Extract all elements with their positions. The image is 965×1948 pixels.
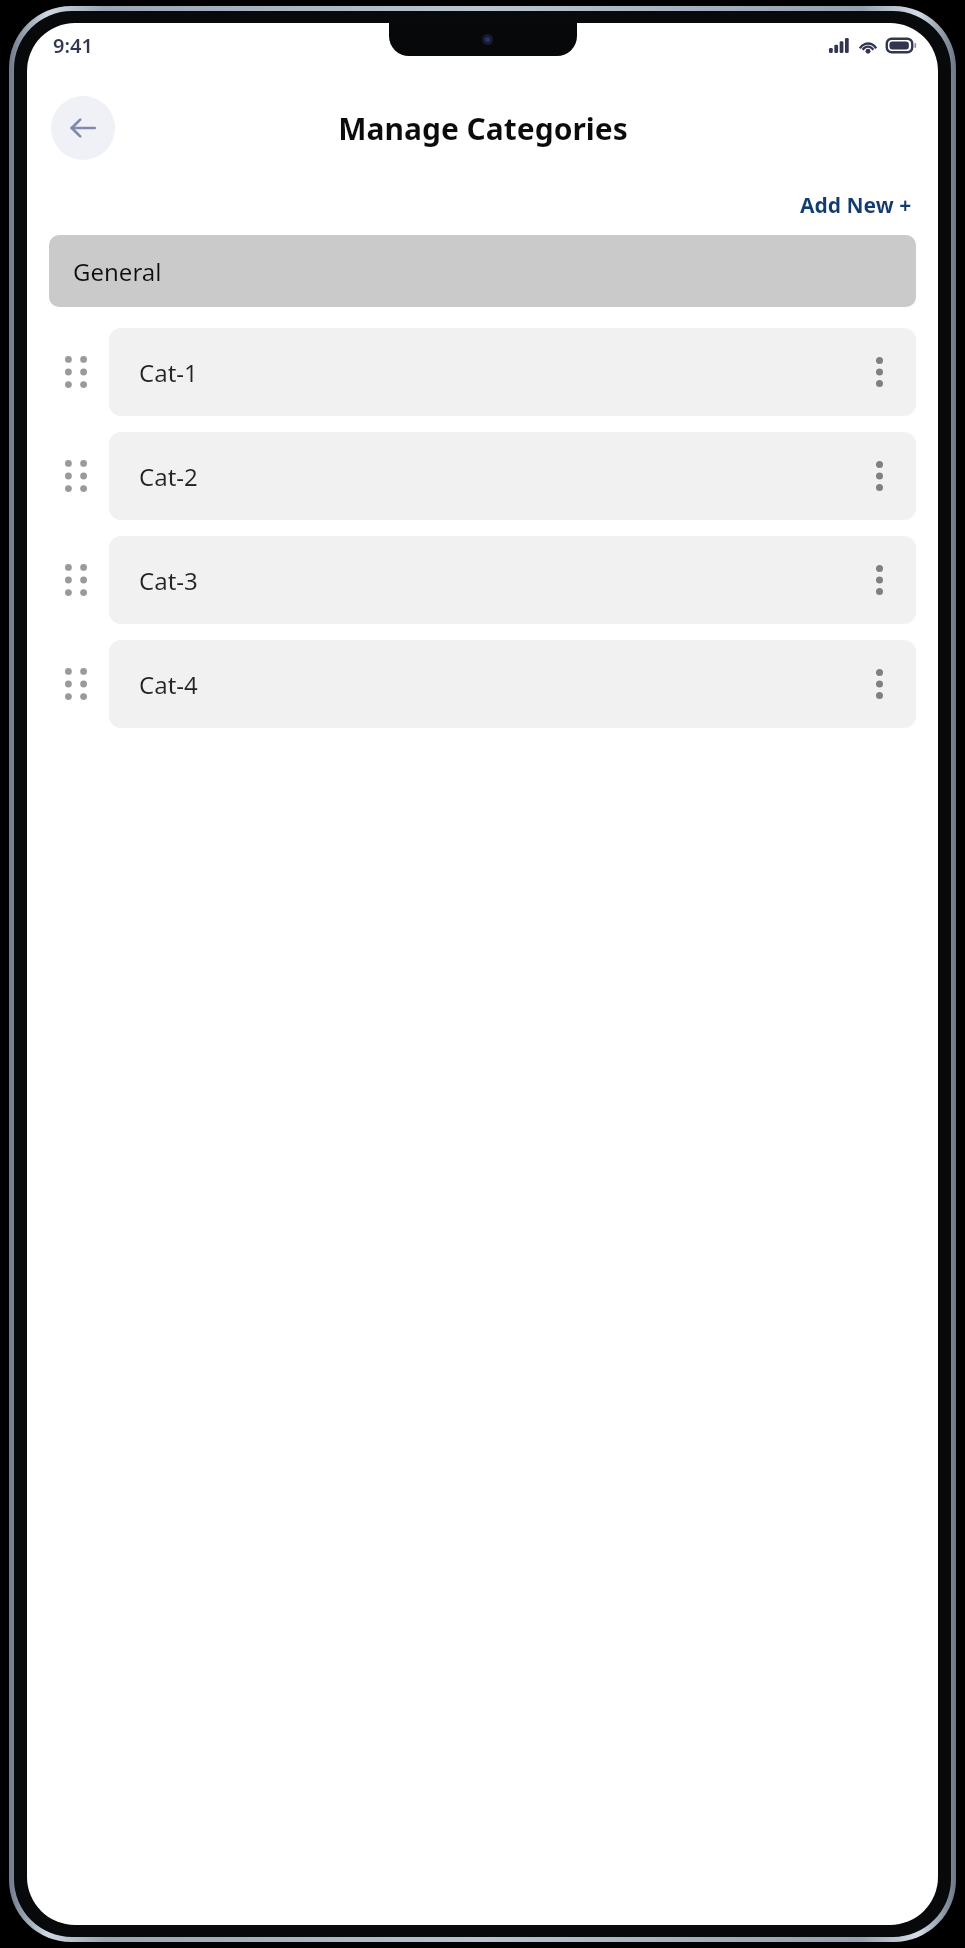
button[interactable]: More options for Cat-4 bbox=[856, 661, 902, 707]
button[interactable]: Reorder Cat-4 bbox=[49, 657, 103, 711]
staticText: General bbox=[73, 255, 162, 288]
button[interactable]: Reorder Cat-2 bbox=[49, 449, 103, 503]
button[interactable]: Back bbox=[51, 96, 115, 160]
staticText: Cat-3 bbox=[139, 564, 856, 597]
button[interactable]: Reorder Cat-1 bbox=[49, 345, 103, 399]
button[interactable]: Cat-2 bbox=[109, 432, 916, 520]
button[interactable]: Cat-4 bbox=[109, 640, 916, 728]
staticText: Cat-1 bbox=[139, 356, 856, 389]
button[interactable]: Reorder Cat-3 bbox=[49, 553, 103, 607]
staticText: Manage Categories bbox=[338, 108, 628, 149]
staticText: Cat-2 bbox=[139, 460, 856, 493]
staticText: 9:41 bbox=[53, 32, 93, 59]
button[interactable]: Cat-3 bbox=[109, 536, 916, 624]
button[interactable]: More options for Cat-2 bbox=[856, 453, 902, 499]
staticText: Add New + bbox=[800, 191, 912, 220]
button[interactable]: Cat-1 bbox=[109, 328, 916, 416]
button[interactable]: Add New + bbox=[796, 187, 916, 224]
staticText: Cat-4 bbox=[139, 668, 856, 701]
button[interactable]: More options for Cat-1 bbox=[856, 349, 902, 395]
button[interactable]: More options for Cat-3 bbox=[856, 557, 902, 603]
button[interactable]: General bbox=[49, 235, 916, 307]
